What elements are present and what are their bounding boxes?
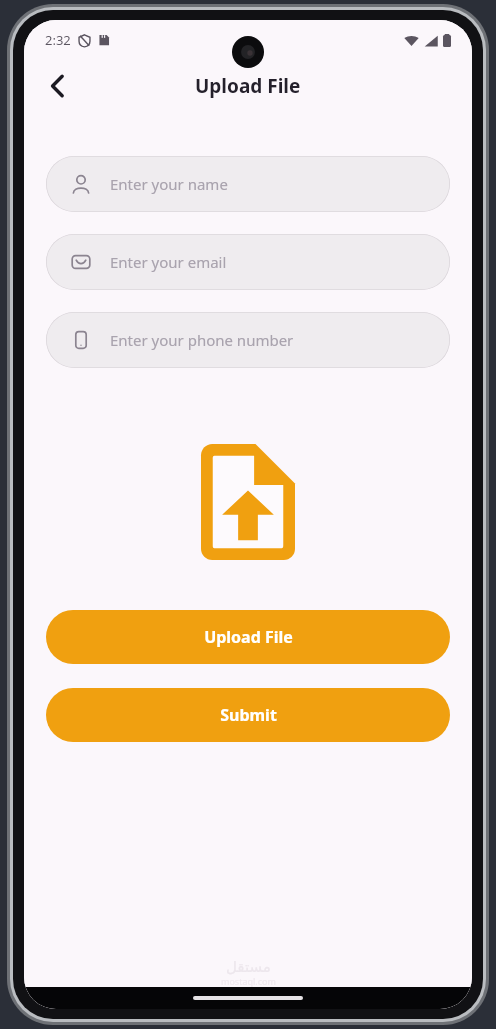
- staticText: Upload File: [204, 626, 293, 648]
- staticText: Enter your name: [110, 174, 228, 194]
- staticText: Enter your phone number: [110, 330, 294, 350]
- button[interactable]: Upload document: [201, 444, 295, 560]
- staticText: Upload File: [195, 73, 301, 99]
- button[interactable]: Submit: [46, 688, 450, 742]
- staticText: Submit: [220, 704, 277, 726]
- button[interactable]: Enter your email: [46, 234, 450, 290]
- staticText: mostaql.com: [221, 975, 276, 987]
- staticText: Enter your email: [110, 252, 227, 272]
- button[interactable]: Enter your phone number: [46, 312, 450, 368]
- staticText: مستقل: [226, 958, 271, 975]
- button[interactable]: Enter your name: [46, 156, 450, 212]
- button[interactable]: Upload File: [46, 610, 450, 664]
- button[interactable]: Back: [35, 64, 79, 108]
- staticText: 2:32: [45, 31, 71, 49]
